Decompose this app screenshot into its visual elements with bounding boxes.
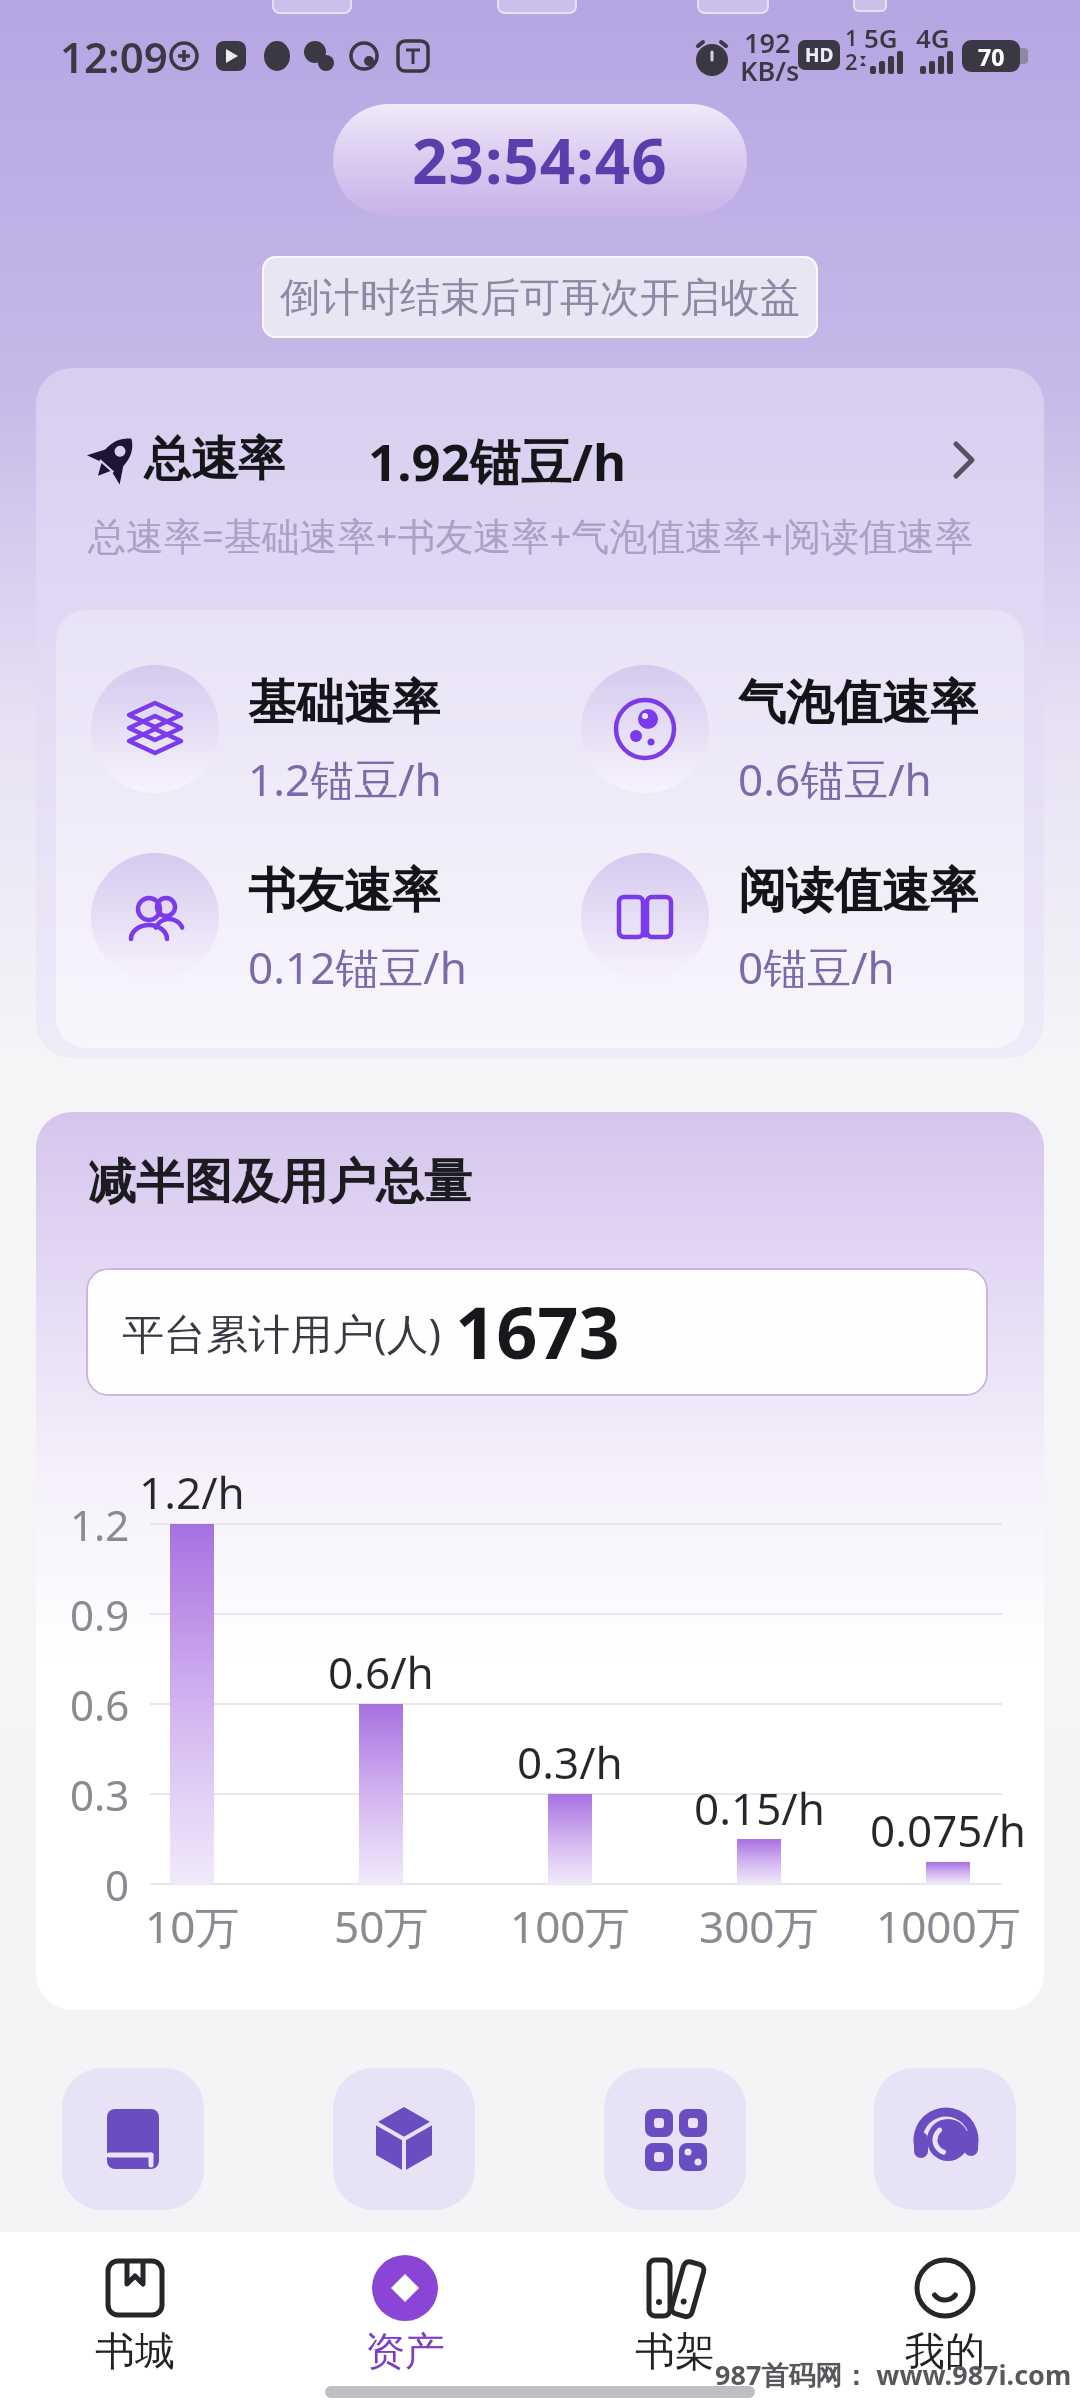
staticText: 总速率=基础速率+书友速率+气泡值速率+阅读值速率 bbox=[88, 509, 973, 561]
staticText: 0.12锚豆/h bbox=[248, 937, 467, 997]
button[interactable] bbox=[86, 1268, 988, 1396]
staticText: 0.9 bbox=[70, 1586, 130, 1643]
staticText: 气泡值速率 bbox=[738, 673, 978, 733]
staticText: 0.075/h bbox=[870, 1800, 1027, 1860]
staticText: 0.6 bbox=[70, 1676, 130, 1733]
staticText: 0 bbox=[105, 1856, 130, 1913]
button[interactable] bbox=[333, 2068, 475, 2210]
button[interactable] bbox=[325, 2240, 485, 2380]
staticText: 300万 bbox=[699, 1896, 819, 1956]
staticText: 100万 bbox=[510, 1896, 630, 1956]
staticText: 1.2/h bbox=[139, 1462, 245, 1522]
staticText: 阅读值速率 bbox=[738, 861, 978, 921]
staticText: 0.3 bbox=[70, 1766, 130, 1823]
staticText: 总速率 bbox=[144, 430, 285, 489]
button[interactable] bbox=[865, 2240, 1025, 2380]
button[interactable] bbox=[874, 2068, 1016, 2210]
staticText: 70 bbox=[978, 41, 1005, 72]
staticText: 资产 bbox=[365, 2326, 445, 2376]
staticText: 减半图及用户总量 bbox=[88, 1152, 472, 1212]
button[interactable] bbox=[62, 2068, 204, 2210]
staticText: 987首码网： www.987i.com bbox=[715, 2356, 1072, 2393]
staticText: 书城 bbox=[95, 2326, 175, 2376]
staticText: KB/s bbox=[740, 52, 800, 89]
staticText: 1 bbox=[845, 22, 858, 52]
staticText: 4G bbox=[916, 20, 950, 55]
staticText: 10万 bbox=[145, 1896, 240, 1956]
staticText: 23:54:46 bbox=[412, 118, 668, 202]
staticText: 5G bbox=[864, 20, 898, 55]
staticText: 书架 bbox=[635, 2326, 715, 2376]
staticText: 倒计时结束后可再次开启收益 bbox=[280, 272, 800, 322]
staticText: 我的 bbox=[905, 2326, 985, 2376]
staticText: 0.3/h bbox=[517, 1732, 623, 1792]
staticText: 1.92锚豆/h bbox=[368, 426, 627, 496]
staticText: 0.6锚豆/h bbox=[738, 749, 932, 809]
staticText: HD bbox=[805, 42, 834, 68]
staticText: 平台累计用户(人) bbox=[122, 1304, 442, 1361]
staticText: 12:09 bbox=[60, 28, 168, 85]
staticText: 192 bbox=[744, 24, 791, 61]
staticText: 50万 bbox=[334, 1896, 429, 1956]
staticText: 1000万 bbox=[876, 1896, 1021, 1956]
button[interactable] bbox=[595, 2240, 755, 2380]
staticText: 1673 bbox=[455, 1282, 620, 1380]
button[interactable] bbox=[55, 2240, 215, 2380]
staticText: 1.2锚豆/h bbox=[248, 749, 442, 809]
staticText: 0锚豆/h bbox=[738, 937, 895, 997]
staticText: 0.15/h bbox=[694, 1778, 825, 1838]
button[interactable] bbox=[36, 410, 1044, 510]
staticText: 0.6/h bbox=[328, 1642, 434, 1702]
button[interactable] bbox=[604, 2068, 746, 2210]
staticText: 2 bbox=[845, 46, 858, 76]
staticText: 基础速率 bbox=[248, 673, 440, 733]
staticText: 书友速率 bbox=[248, 861, 440, 921]
staticText: 1.2 bbox=[70, 1496, 130, 1553]
